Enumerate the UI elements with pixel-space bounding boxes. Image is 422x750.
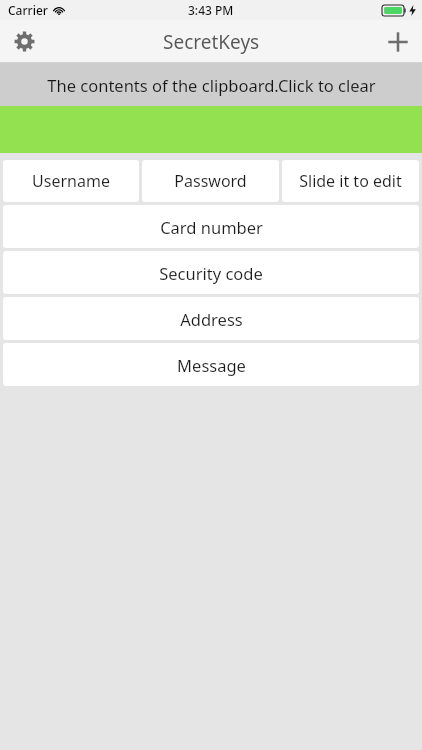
staticText: Address (180, 308, 243, 330)
staticText: Security code (159, 262, 263, 284)
button[interactable]: Security code (3, 251, 419, 294)
staticText: Password (174, 170, 247, 192)
staticText: SecretKeys (163, 29, 260, 55)
button[interactable]: Password (142, 160, 279, 202)
button[interactable]: The contents of the clipboard.Click to c… (0, 63, 422, 106)
button[interactable]: Slide it to edit (282, 160, 419, 202)
staticText: The contents of the clipboard.Click to c… (47, 74, 376, 96)
button[interactable]: Message (3, 343, 419, 386)
staticText: Carrier (8, 2, 48, 18)
button[interactable]: Address (3, 297, 419, 340)
staticText: Username (32, 170, 110, 192)
button[interactable]: Card number (3, 205, 419, 248)
button[interactable]: Add (374, 20, 422, 63)
button[interactable]: Username (3, 160, 139, 202)
staticText: Slide it to edit (299, 170, 402, 192)
staticText: Card number (160, 216, 263, 238)
button[interactable]: Settings (0, 20, 48, 63)
staticText: 3:43 PM (188, 2, 234, 18)
staticText: Message (177, 354, 246, 376)
